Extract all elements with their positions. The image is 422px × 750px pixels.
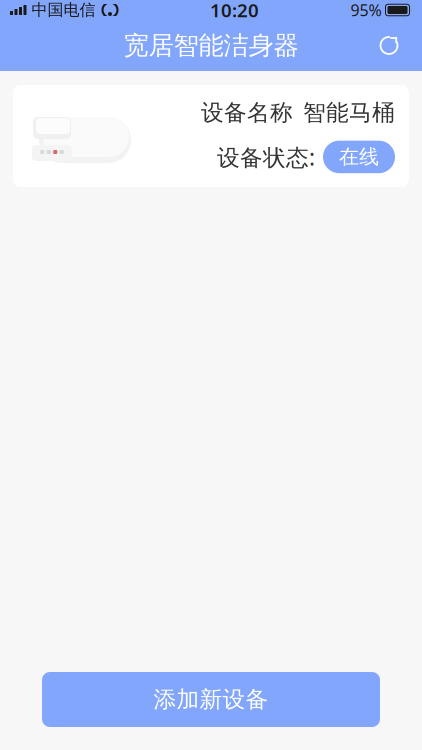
staticText: 添加新设备: [153, 686, 268, 713]
staticText: 智能马桶: [303, 99, 395, 127]
staticText: 10:20: [210, 0, 259, 22]
staticText: 设备名称: [201, 99, 293, 127]
staticText: 宽居智能洁身器: [123, 30, 298, 61]
button[interactable]: 添加新设备: [42, 672, 380, 727]
staticText: 在线: [339, 145, 379, 169]
staticText: 中国电信: [31, 0, 95, 20]
staticText: 设备状态:: [217, 142, 315, 172]
button[interactable]: 刷新: [372, 28, 406, 62]
staticText: 95%: [350, 0, 381, 21]
